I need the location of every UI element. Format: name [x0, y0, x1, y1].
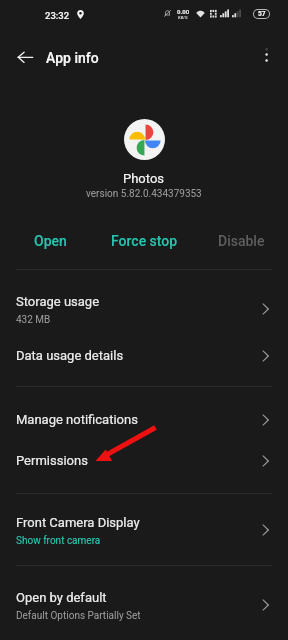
button[interactable]: Data usage details — [0, 330, 288, 386]
staticText: 23:32 — [45, 10, 70, 21]
staticText: Data usage details — [16, 348, 124, 363]
button[interactable]: Storage usage — [0, 269, 288, 330]
staticText: Force stop — [111, 233, 178, 249]
button[interactable]: More options — [252, 42, 281, 71]
button[interactable]: Open by default — [0, 565, 288, 640]
staticText: App info — [46, 50, 99, 66]
staticText: 0.00 — [177, 8, 190, 15]
button[interactable]: Force stop — [102, 230, 186, 252]
staticText: Permissions — [16, 453, 88, 468]
staticText: Default Options Partially Set — [16, 610, 141, 622]
button[interactable]: Back — [9, 41, 42, 74]
staticText: KB/S — [178, 15, 188, 20]
staticText: Photos — [123, 171, 165, 186]
staticText: 432 MB — [16, 314, 51, 326]
staticText: Open by default — [16, 590, 107, 605]
button[interactable]: Permissions — [0, 437, 288, 493]
staticText: Show front camera — [16, 535, 101, 547]
staticText: Storage usage — [16, 294, 100, 309]
button[interactable]: Open — [8, 230, 92, 252]
staticText: Open — [34, 233, 67, 249]
staticText: 57 — [258, 10, 266, 18]
staticText: Disable — [218, 233, 265, 249]
staticText: Front Camera Display — [16, 515, 140, 530]
staticText: Manage notifications — [16, 412, 138, 427]
staticText: version 5.82.0.434379353 — [86, 188, 202, 200]
button[interactable]: Manage notifications — [0, 386, 288, 437]
button[interactable]: Front Camera Display — [0, 493, 288, 565]
